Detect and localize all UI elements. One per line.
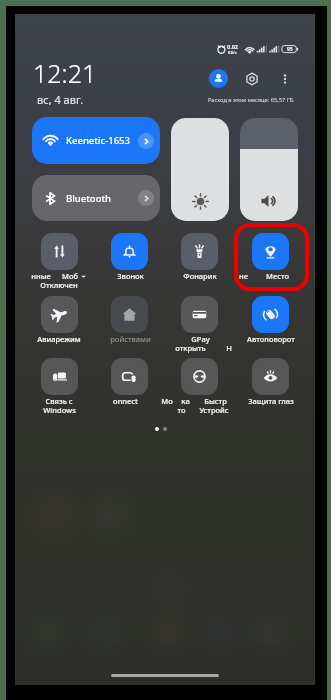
button[interactable]: Bluetooth <box>32 175 160 221</box>
staticText: ка <box>181 396 190 406</box>
staticText: Bluetooth <box>66 192 112 205</box>
button[interactable]: Volume <box>240 118 298 221</box>
button[interactable]: onnect <box>111 358 148 395</box>
staticText: Защита глаз <box>248 396 294 406</box>
button[interactable]: Звонок <box>111 233 148 270</box>
button[interactable]: Keenetic-1653 <box>32 117 160 164</box>
staticText: Н <box>226 343 232 353</box>
staticText: Keenetic-1653 <box>66 134 130 147</box>
staticText: onnect <box>113 396 138 406</box>
staticText: Моб <box>62 271 78 281</box>
staticText: Звонок <box>117 271 144 281</box>
staticText: Мо <box>161 396 173 406</box>
staticText: не <box>239 271 248 281</box>
staticText: Фонарик <box>183 271 217 281</box>
staticText: Расход в этом месяце: 65,57 ГБ. <box>208 96 295 104</box>
staticText: вс, 4 авг. <box>37 92 84 107</box>
staticText: 95 <box>287 46 293 53</box>
staticText: Автоповорот <box>247 334 295 344</box>
button[interactable]: Место <box>252 233 289 270</box>
button[interactable]: Автоповорот <box>252 296 289 333</box>
staticText: Windows <box>43 405 76 415</box>
staticText: Отключен <box>40 280 78 290</box>
staticText: нные <box>31 271 51 281</box>
staticText: Место <box>266 271 289 281</box>
button[interactable]: Brightness <box>171 118 229 221</box>
button[interactable]: ройствами <box>111 296 148 333</box>
staticText: Связь с <box>45 396 73 406</box>
staticText: Быстр <box>204 396 227 406</box>
button[interactable]: Защита глаз <box>252 358 289 395</box>
button[interactable]: нные <box>41 233 78 270</box>
button[interactable]: GPay <box>181 296 218 333</box>
staticText: Устройс <box>199 405 229 415</box>
button[interactable]: Связь с Windows <box>41 358 78 395</box>
staticText: 0.02 <box>227 43 238 50</box>
button[interactable]: Фонарик <box>181 233 218 270</box>
staticText: открыть <box>175 343 206 353</box>
staticText: GPay <box>191 334 210 344</box>
button[interactable]: Account <box>209 69 228 88</box>
button[interactable]: Авиарежим <box>41 296 78 333</box>
button[interactable]: Быстр <box>181 358 218 395</box>
staticText: Авиарежим <box>37 334 81 344</box>
staticText: ройствами <box>110 334 151 344</box>
button[interactable]: More options <box>275 69 294 88</box>
button[interactable]: Settings <box>242 69 261 88</box>
staticText: 12:21 <box>33 56 97 90</box>
staticText: то <box>177 405 186 415</box>
staticText: КБ/с <box>228 50 237 55</box>
